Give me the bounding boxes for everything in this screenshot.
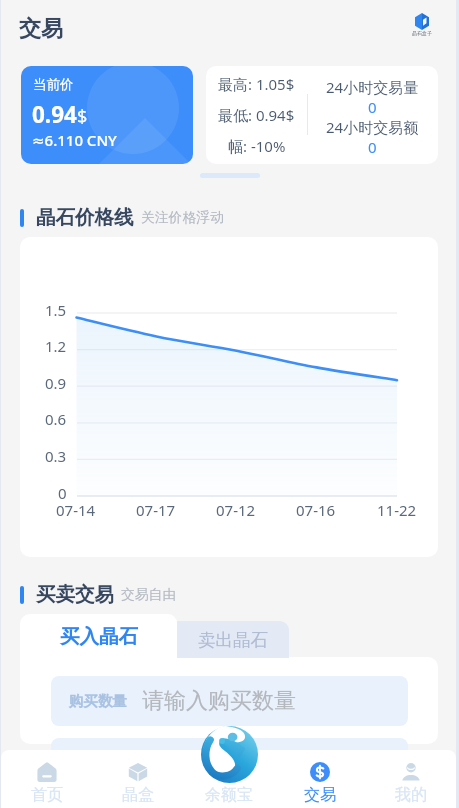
button[interactable]: 余额宝	[183, 750, 274, 808]
staticText: 交易自由	[121, 586, 177, 603]
staticText: 0.9	[45, 373, 67, 393]
button[interactable]: 买入晶石	[20, 614, 177, 658]
staticText: 买卖交易	[36, 582, 114, 607]
staticText: ≈6.110 CNY	[32, 130, 117, 150]
button[interactable]: 晶石盒子	[406, 13, 438, 36]
button[interactable]: 购买数量	[51, 676, 408, 726]
staticText: 07-14	[56, 500, 96, 520]
staticText: 幅: -10%	[228, 136, 286, 156]
staticText: 晶石价格线	[36, 205, 134, 230]
staticText: 当前价	[33, 76, 74, 93]
staticText: 1.2	[45, 336, 67, 356]
staticText: 24小时交易量	[326, 77, 419, 97]
staticText: 最高: 1.05$	[218, 74, 295, 94]
button[interactable]: 我的	[365, 750, 456, 808]
staticText: 关注价格浮动	[141, 209, 224, 226]
staticText: 0.94	[32, 99, 77, 130]
staticText: 07-17	[136, 500, 176, 520]
staticText: $	[77, 104, 88, 129]
button[interactable]: 当前价	[21, 66, 193, 164]
staticText: 晶石盒子	[412, 30, 432, 36]
button[interactable]: 交易	[274, 750, 365, 808]
staticText: 0.3	[45, 446, 67, 466]
staticText: 07-12	[216, 500, 256, 520]
staticText: 首页	[31, 785, 63, 805]
button[interactable]: 首页	[1, 750, 92, 808]
staticText: 0.6	[45, 409, 67, 429]
staticText: 买入晶石	[60, 624, 138, 649]
staticText: 1.5	[45, 300, 67, 320]
button[interactable]: 卖出晶石	[177, 621, 289, 658]
staticText: 24小时交易额	[326, 117, 419, 137]
staticText: 卖出晶石	[198, 629, 268, 651]
staticText: 交易	[19, 15, 63, 43]
staticText: 购买数量	[69, 692, 127, 710]
staticText: 0	[58, 483, 67, 503]
staticText: 最低: 0.94$	[218, 105, 295, 125]
staticText: 0	[368, 97, 377, 117]
staticText: 晶盒	[122, 785, 154, 805]
button[interactable]: 晶盒	[92, 750, 183, 808]
staticText: 我的	[395, 785, 427, 805]
staticText: 交易	[304, 785, 336, 805]
staticText: 请输入购买数量	[142, 687, 296, 715]
staticText: 07-16	[296, 500, 336, 520]
staticText: 余额宝	[205, 785, 253, 805]
staticText: 0	[368, 137, 377, 157]
button[interactable]: 余额宝	[201, 726, 258, 783]
staticText: 11-22	[377, 500, 417, 520]
